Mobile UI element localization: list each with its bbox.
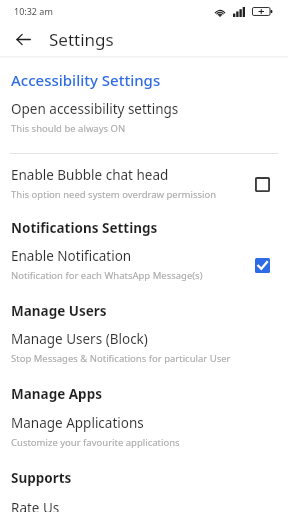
button[interactable]: Manage Users (Block)	[0, 330, 288, 365]
staticText: This option need system overdraw permiss…	[11, 188, 217, 201]
staticText: Stop Messages & Notifications for partic…	[11, 352, 231, 365]
staticText: Supports	[11, 469, 277, 487]
button[interactable]: Enable Notification	[0, 247, 288, 282]
button[interactable]: Open accessibility settings	[0, 100, 288, 135]
staticText: Enable Bubble chat head	[11, 166, 169, 184]
staticText: Accessibility Settings	[11, 70, 277, 90]
staticText: 10:32 am	[14, 5, 53, 17]
staticText: Rate Us	[11, 499, 60, 512]
staticText: Notifications Settings	[11, 219, 277, 237]
button[interactable]: Rate Us	[0, 499, 288, 512]
staticText: Enable Notification	[11, 247, 132, 265]
button[interactable]: Manage Applications	[0, 414, 288, 449]
button[interactable]: Enabled	[249, 252, 275, 278]
staticText: Manage Apps	[11, 385, 277, 403]
button[interactable]: Enable Bubble chat head	[0, 166, 288, 201]
staticText: Settings	[49, 28, 114, 51]
staticText: Manage Applications	[11, 414, 144, 432]
staticText: Open accessibility settings	[11, 100, 179, 118]
button[interactable]: Back	[8, 24, 38, 54]
staticText: Customize your favourite applications	[11, 436, 180, 449]
staticText: This should be always ON	[11, 122, 126, 135]
staticText: Manage Users (Block)	[11, 330, 148, 348]
button[interactable]: Disabled	[249, 171, 275, 197]
staticText: Notification for each WhatsApp Message(s…	[11, 269, 203, 282]
staticText: Manage Users	[11, 302, 277, 320]
